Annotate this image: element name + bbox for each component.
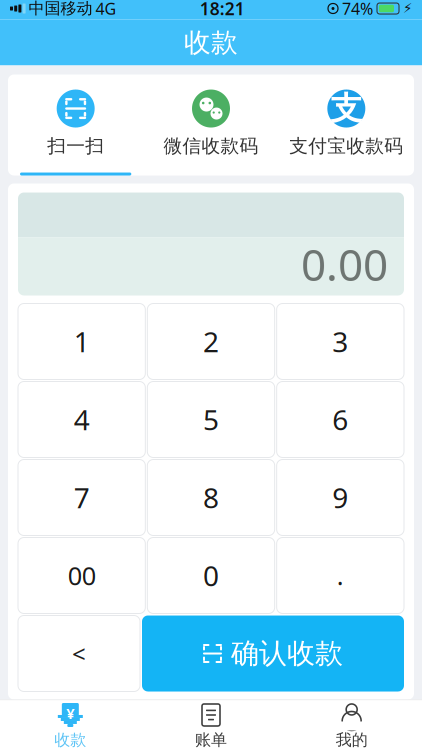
button[interactable]: 微信收款码 <box>143 74 279 175</box>
button[interactable]: Delete <box>18 615 140 691</box>
staticText: 收款 <box>54 730 86 750</box>
staticText: 6 <box>332 401 348 438</box>
staticText: 扫一扫 <box>47 134 104 157</box>
button[interactable]: 7 <box>18 459 145 535</box>
staticText: 7 <box>74 479 90 516</box>
staticText: 我的 <box>336 730 368 750</box>
staticText: 18:21 <box>200 0 245 20</box>
staticText: 支 <box>330 89 362 128</box>
staticText: 5 <box>203 401 219 438</box>
button[interactable]: 支 <box>279 74 414 175</box>
staticText: 0.00 <box>301 235 388 293</box>
button[interactable]: 6 <box>277 381 404 457</box>
button[interactable]: 扫一扫 <box>8 74 143 175</box>
staticText: . <box>337 559 344 592</box>
staticText: 收款 <box>184 26 238 59</box>
button[interactable]: 8 <box>147 459 275 535</box>
button[interactable]: 确认收款 <box>142 615 404 691</box>
staticText: ¥ <box>66 703 74 723</box>
staticText: 00 <box>68 559 96 592</box>
staticText: 账单 <box>195 730 227 750</box>
button[interactable]: 2 <box>147 303 275 379</box>
staticText: 确认收款 <box>231 636 343 671</box>
staticText: 9 <box>332 479 348 516</box>
button[interactable]: 00 <box>18 537 145 613</box>
button[interactable]: 3 <box>277 303 404 379</box>
staticText: ⚡︎ <box>403 1 412 16</box>
staticText: 1 <box>74 323 90 360</box>
button[interactable]: 5 <box>147 381 275 457</box>
staticText: < <box>72 638 86 669</box>
button[interactable]: ¥ <box>0 700 141 750</box>
staticText: 8 <box>203 479 219 516</box>
button[interactable]: 账单 <box>141 700 281 750</box>
button[interactable]: . <box>277 537 404 613</box>
button[interactable]: 我的 <box>281 700 422 750</box>
staticText: 微信收款码 <box>163 134 258 157</box>
button[interactable]: 1 <box>18 303 145 379</box>
button[interactable]: 4 <box>18 381 145 457</box>
staticText: 中国移动 <box>29 0 93 18</box>
staticText: 74% <box>342 0 373 19</box>
staticText: 0 <box>203 557 219 594</box>
staticText: 3 <box>332 323 348 360</box>
staticText: 4G <box>96 0 117 19</box>
staticText: 4 <box>74 401 90 438</box>
staticText: 2 <box>203 323 219 360</box>
staticText: 支付宝收款码 <box>289 134 403 157</box>
button[interactable]: 9 <box>277 459 404 535</box>
button[interactable]: 0 <box>147 537 275 613</box>
